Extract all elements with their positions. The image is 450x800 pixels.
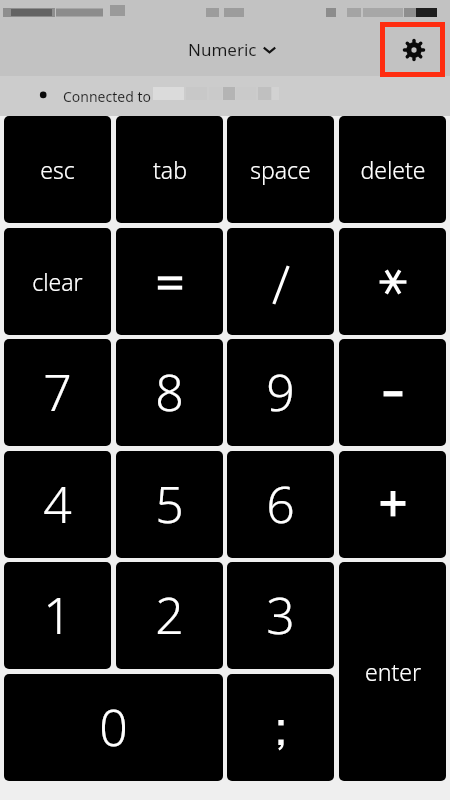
staticText: 6 — [266, 470, 295, 538]
staticText: 0 — [99, 693, 128, 761]
button[interactable]: enter — [339, 562, 446, 781]
button[interactable]: 6 — [227, 451, 334, 558]
button[interactable]: delete — [339, 116, 446, 223]
staticText: space — [250, 154, 311, 185]
button[interactable]: 2 — [116, 562, 223, 669]
staticText: Connected to — [63, 87, 151, 106]
button[interactable]: plus — [339, 451, 446, 558]
staticText: esc — [40, 154, 75, 185]
staticText: enter — [365, 656, 421, 687]
button[interactable]: 7 — [4, 339, 111, 446]
button[interactable]: 8 — [116, 339, 223, 446]
staticText: 8 — [155, 358, 184, 426]
button[interactable]: esc — [4, 116, 111, 223]
button[interactable]: 1 — [4, 562, 111, 669]
button[interactable]: multiply — [339, 228, 446, 335]
staticText: 1 — [43, 581, 72, 649]
button[interactable]: 5 — [116, 451, 223, 558]
button[interactable]: 3 — [227, 562, 334, 669]
staticText: 4 — [43, 470, 72, 538]
button[interactable]: semicolon — [227, 674, 334, 781]
staticText: 7 — [43, 358, 72, 426]
staticText: delete — [360, 154, 426, 185]
button[interactable]: Numeric — [188, 38, 276, 61]
button[interactable]: clear — [4, 228, 111, 335]
staticText: 5 — [155, 470, 184, 538]
staticText: 2 — [155, 581, 184, 649]
staticText: clear — [32, 266, 83, 297]
staticText: 3 — [266, 581, 295, 649]
button[interactable]: Settings — [380, 22, 445, 77]
button[interactable]: equals — [116, 228, 223, 335]
button[interactable]: 9 — [227, 339, 334, 446]
button[interactable]: tab — [116, 116, 223, 223]
button[interactable]: 4 — [4, 451, 111, 558]
button[interactable]: divide — [227, 228, 334, 335]
button[interactable]: minus — [339, 339, 446, 446]
button[interactable]: space — [227, 116, 334, 223]
staticText: 9 — [266, 358, 295, 426]
staticText: tab — [153, 154, 187, 185]
staticText: Numeric — [188, 38, 257, 61]
button[interactable]: 0 — [4, 674, 223, 781]
